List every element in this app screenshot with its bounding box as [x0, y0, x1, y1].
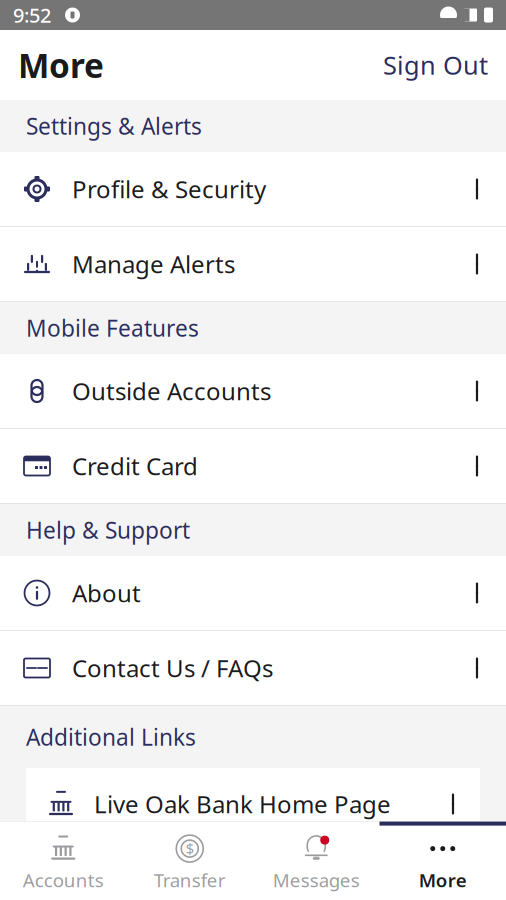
button[interactable]: Profile & Security: [0, 152, 506, 227]
staticText: Credit Card: [72, 450, 198, 482]
staticText: About: [72, 577, 141, 609]
staticText: Manage Alerts: [72, 248, 235, 280]
staticText: Accounts: [23, 868, 104, 892]
button[interactable]: Contact Us / FAQs: [0, 631, 506, 706]
staticText: Additional Links: [26, 722, 196, 752]
staticText: More: [18, 43, 104, 87]
staticText: Mobile Features: [26, 313, 199, 343]
staticText: Sign Out: [383, 48, 488, 82]
button[interactable]: More: [379, 822, 506, 900]
staticText: Settings & Alerts: [26, 111, 202, 141]
button[interactable]: Outside Accounts: [0, 354, 506, 429]
staticText: $: [186, 839, 194, 858]
staticText: More: [419, 868, 467, 892]
staticText: Profile & Security: [72, 173, 266, 205]
staticText: Live Oak Bank Home Page: [94, 788, 391, 820]
button[interactable]: Sign Out: [383, 48, 488, 82]
staticText: Transfer: [154, 868, 226, 892]
staticText: Help & Support: [26, 515, 190, 545]
button[interactable]: Credit Card: [0, 429, 506, 504]
button[interactable]: $: [126, 822, 253, 900]
staticText: Messages: [273, 868, 360, 892]
button[interactable]: Accounts: [0, 822, 126, 900]
button[interactable]: About: [0, 556, 506, 631]
staticText: Outside Accounts: [72, 375, 271, 407]
button[interactable]: Messages: [253, 822, 379, 900]
staticText: Contact Us / FAQs: [72, 652, 273, 684]
staticText: 9:52: [13, 2, 51, 28]
button[interactable]: Manage Alerts: [0, 227, 506, 302]
button[interactable]: Live Oak Bank Home Page: [26, 768, 480, 840]
